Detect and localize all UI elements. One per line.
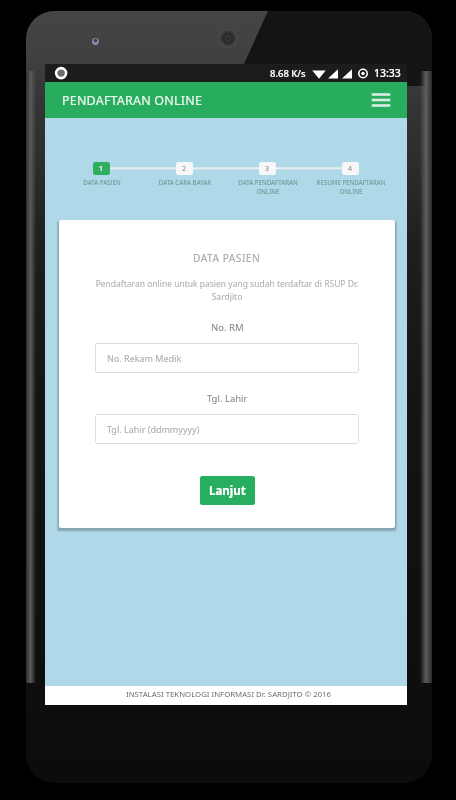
- button[interactable]: 4: [342, 162, 359, 175]
- staticText: RESUME PENDAFTARAN ONLINE: [313, 178, 389, 196]
- staticText: No. Rekam Medik: [107, 352, 182, 364]
- staticText: 1: [99, 164, 104, 174]
- staticText: DATA PENDAFTARAN ONLINE: [230, 178, 306, 196]
- staticText: 2: [182, 164, 187, 174]
- staticText: DATA CARA BAYAR: [147, 178, 223, 186]
- staticText: No. RM: [211, 321, 244, 334]
- staticText: PENDAFTARAN ONLINE: [62, 92, 203, 109]
- staticText: INSTALASI TEKNOLOGI INFORMASI Dr. SARDJI…: [126, 689, 332, 700]
- staticText: 4: [348, 164, 353, 174]
- button[interactable]: 3: [259, 162, 276, 175]
- button[interactable]: 2: [176, 162, 193, 175]
- staticText: Tgl. Lahir (ddmmyyyy): [107, 423, 200, 435]
- button[interactable]: Menu: [370, 89, 392, 111]
- staticText: Lanjut: [209, 483, 246, 499]
- staticText: DATA PASIEN: [64, 178, 140, 186]
- staticText: 8.68 K/s: [270, 67, 306, 80]
- staticText: 3: [265, 164, 270, 174]
- button[interactable]: No. Rekam Medik: [95, 343, 359, 373]
- button[interactable]: 1: [93, 162, 110, 175]
- staticText: Tgl. Lahir: [207, 392, 248, 405]
- button[interactable]: Lanjut: [200, 476, 255, 505]
- button[interactable]: Tgl. Lahir (ddmmyyyy): [95, 414, 359, 444]
- staticText: DATA PASIEN: [193, 251, 261, 265]
- staticText: Pendaftaran online untuk pasien yang sud…: [95, 278, 359, 303]
- staticText: 13:33: [374, 66, 401, 80]
